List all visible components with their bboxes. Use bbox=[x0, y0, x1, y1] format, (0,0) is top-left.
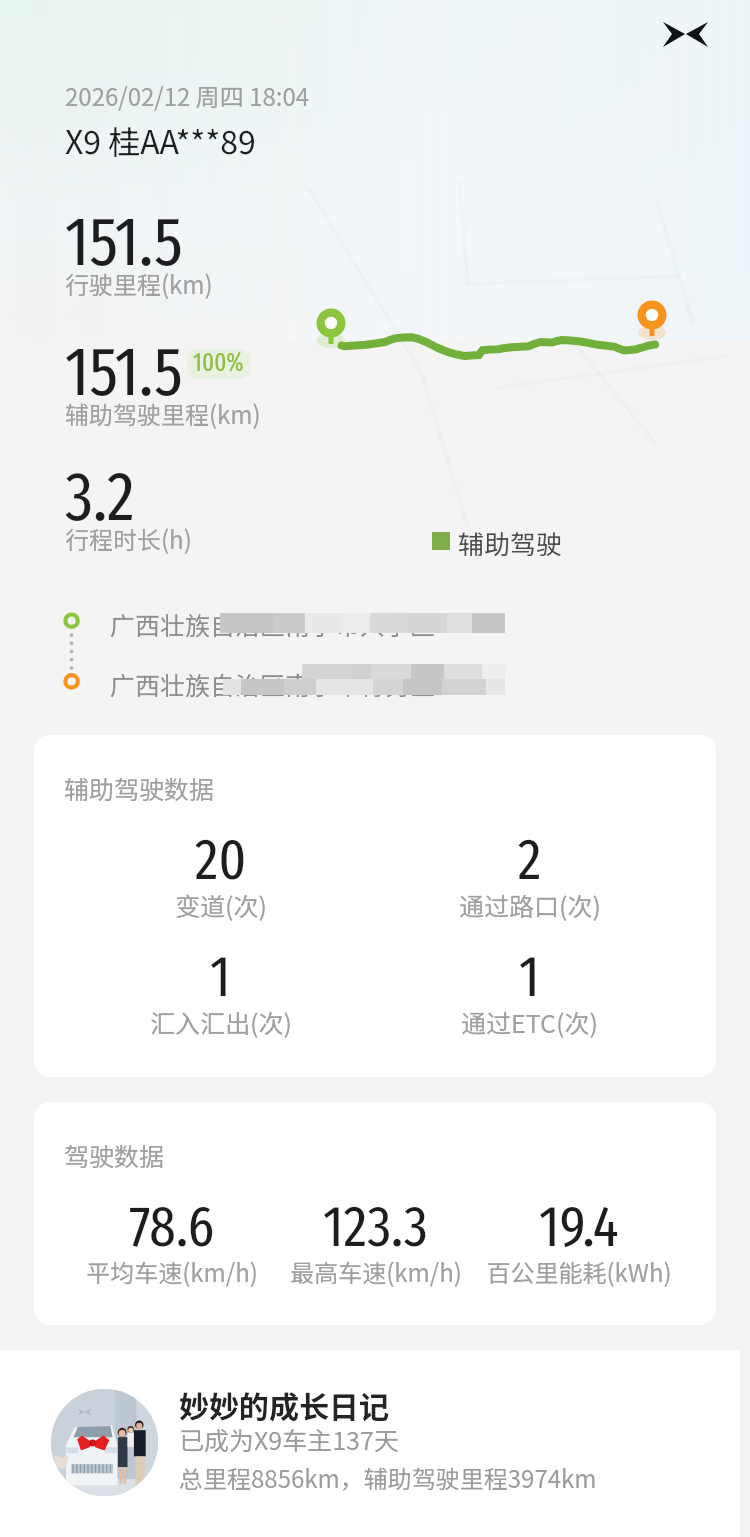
staticText: 20 bbox=[195, 825, 247, 895]
staticText: 妙妙的成长日记 bbox=[179, 1383, 389, 1426]
button[interactable]: 妙妙的成长日记 bbox=[0, 1350, 740, 1537]
staticText: 辅助驾驶 bbox=[458, 524, 563, 562]
staticText: 辅助驾驶数据 bbox=[64, 770, 215, 806]
staticText: 百公里能耗(kWh) bbox=[486, 1254, 672, 1289]
staticText: 平均车速(km/h) bbox=[86, 1254, 258, 1289]
staticText: 3.2 bbox=[65, 456, 135, 538]
staticText: 通过ETC(次) bbox=[461, 1004, 598, 1040]
staticText: 辅助驾驶里程(km) bbox=[65, 396, 261, 431]
staticText: 总里程8856km，辅助驾驶里程3974km bbox=[179, 1460, 597, 1495]
staticText: 1 bbox=[210, 942, 231, 1012]
staticText: X9 桂AA***89 bbox=[65, 117, 256, 163]
staticText: 行程时长(h) bbox=[65, 521, 192, 556]
staticText: 151.5 bbox=[65, 331, 183, 413]
staticText: 最高车速(km/h) bbox=[290, 1254, 462, 1289]
staticText: 广西壮族自治区南宁市青秀区 bbox=[110, 666, 436, 702]
staticText: 通过路口(次) bbox=[459, 887, 601, 923]
staticText: 汇入汇出(次) bbox=[150, 1004, 292, 1040]
staticText: 2026/02/12 周四 18:04 bbox=[65, 78, 310, 113]
staticText: 驾驶数据 bbox=[64, 1137, 165, 1173]
staticText: 变道(次) bbox=[175, 887, 267, 923]
staticText: 151.5 bbox=[65, 201, 183, 283]
staticText: 2 bbox=[518, 825, 542, 895]
staticText: 123.3 bbox=[323, 1192, 428, 1262]
staticText: 100% bbox=[193, 349, 244, 378]
staticText: 已成为X9车主137天 bbox=[179, 1421, 399, 1457]
staticText: 广西壮族自治区南宁市兴宁区 bbox=[110, 606, 436, 642]
staticText: 19.4 bbox=[539, 1192, 619, 1262]
staticText: 行驶里程(km) bbox=[65, 266, 213, 301]
staticText: 78.6 bbox=[129, 1192, 215, 1262]
button[interactable]: XPeng logo bbox=[641, 0, 729, 68]
staticText: 1 bbox=[519, 942, 540, 1012]
